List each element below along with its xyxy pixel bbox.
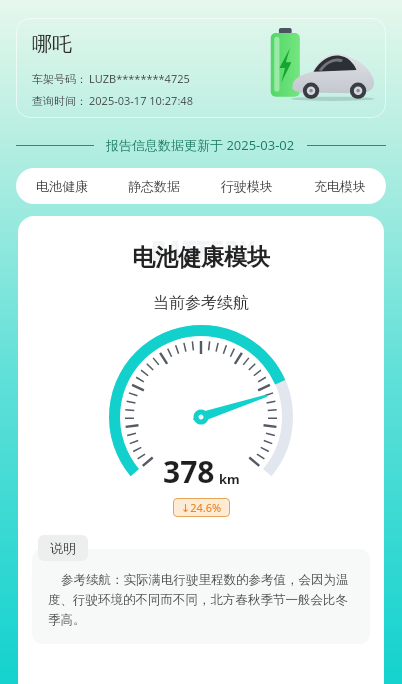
staticText: BATTERY <box>149 232 253 267</box>
staticText: 电池健康模块 <box>132 243 270 272</box>
button[interactable]: 电池健康 <box>16 168 108 204</box>
staticText: 静态数据 <box>128 178 180 194</box>
staticText: 哪吒 <box>32 32 72 57</box>
staticText: 当前参考续航 <box>153 293 249 313</box>
staticText: 充电模块 <box>314 178 366 194</box>
staticText: 378 <box>163 451 215 492</box>
staticText: 电池健康 <box>36 178 88 194</box>
staticText: LUZB********4725 <box>89 71 190 86</box>
button[interactable]: 充电模块 <box>293 168 386 204</box>
staticText: 查询时间： <box>32 94 87 108</box>
staticText: 报告信息数据更新于 2025-03-02 <box>106 136 295 154</box>
staticText: 行驶模块 <box>221 178 273 194</box>
staticText: 2025-03-17 10:27:48 <box>89 93 193 108</box>
staticText: ↓24.6% <box>181 500 222 515</box>
staticText: km <box>219 470 240 488</box>
staticText: 说明 <box>50 540 76 556</box>
button[interactable]: 行驶模块 <box>200 168 293 204</box>
staticText: 车架号码： <box>32 72 87 86</box>
button[interactable]: 静态数据 <box>108 168 200 204</box>
staticText: 参考续航：实际满电行驶里程数的参考值，会因为温度、行驶环境的不同而不同，北方春秋… <box>48 571 356 628</box>
